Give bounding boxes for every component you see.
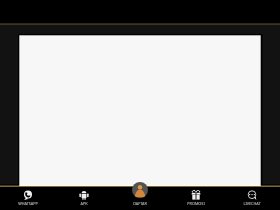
staticText: APK: [80, 201, 88, 206]
button[interactable]: LIVECHAT: [224, 187, 280, 210]
button[interactable]: APK: [56, 187, 112, 210]
button[interactable]: PROMOSI: [168, 187, 224, 210]
button[interactable]: Daftar: [132, 182, 148, 198]
staticText: DAFTAR: [133, 201, 147, 206]
staticText: WHATSAPP: [18, 201, 38, 206]
staticText: LIVECHAT: [243, 201, 261, 206]
button[interactable]: DAFTAR: [112, 187, 168, 210]
staticText: PROMOSI: [187, 201, 205, 206]
button[interactable]: WHATSAPP: [0, 187, 56, 210]
